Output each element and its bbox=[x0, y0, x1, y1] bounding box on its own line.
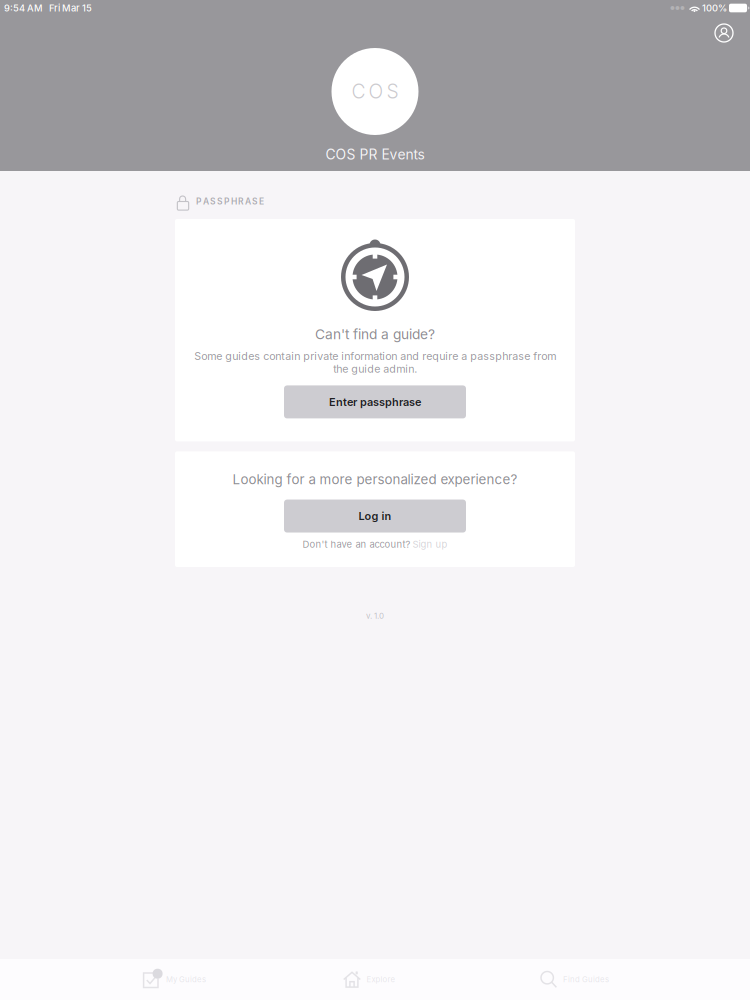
staticText: Fri Mar 15 bbox=[43, 2, 92, 14]
staticText: Log in bbox=[358, 509, 391, 523]
staticText: C O S bbox=[351, 80, 398, 103]
staticText: COS PR Events bbox=[325, 146, 424, 163]
staticText: P A S S P H R A S E bbox=[196, 196, 264, 207]
staticText: Explore bbox=[366, 975, 395, 984]
button[interactable]: Log in bbox=[284, 500, 466, 533]
staticText: My Guides bbox=[166, 975, 206, 984]
staticText: Sign up bbox=[412, 539, 447, 550]
staticText: Some guides contain private information … bbox=[194, 350, 556, 375]
button[interactable]: Account bbox=[709, 18, 739, 48]
button[interactable]: Find Guides bbox=[541, 959, 607, 1000]
staticText: Enter passphrase bbox=[329, 395, 421, 408]
staticText: 9:54 AM bbox=[4, 2, 43, 14]
button[interactable]: Enter passphrase bbox=[284, 385, 466, 418]
staticText: Find Guides bbox=[563, 975, 609, 984]
staticText: 100% bbox=[700, 2, 729, 14]
button[interactable]: My Guides bbox=[143, 959, 205, 1000]
button[interactable]: Explore bbox=[343, 959, 395, 1000]
button[interactable]: Sign up bbox=[412, 539, 447, 550]
staticText: ●●● bbox=[670, 5, 685, 11]
staticText: Looking for a more personalized experien… bbox=[232, 471, 517, 487]
staticText: Can't find a guide? bbox=[315, 326, 435, 343]
staticText: Don't have an account? bbox=[302, 539, 410, 550]
staticText: v. 1.0 bbox=[366, 611, 384, 621]
